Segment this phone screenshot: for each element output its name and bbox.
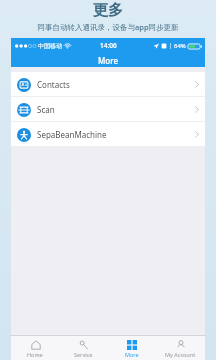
- button[interactable]: More: [107, 336, 156, 360]
- staticText: Contacts: [37, 79, 70, 90]
- staticText: 同事自动转入通讯录，设备与app同步更新: [0, 22, 216, 32]
- button[interactable]: Home: [11, 336, 59, 360]
- staticText: More: [98, 55, 119, 66]
- staticText: SepaBeanMachine: [37, 129, 107, 140]
- button[interactable]: Contacts: [11, 72, 205, 96]
- button[interactable]: My Account: [156, 336, 205, 360]
- button[interactable]: SepaBeanMachine: [11, 122, 205, 146]
- staticText: 14:06: [100, 41, 117, 50]
- staticText: 64%: [174, 42, 186, 50]
- staticText: Service: [74, 351, 93, 358]
- button[interactable]: Service: [59, 336, 107, 360]
- staticText: 中国移动: [38, 42, 62, 50]
- button[interactable]: Scan: [11, 97, 205, 121]
- staticText: More: [125, 351, 139, 358]
- staticText: Scan: [37, 104, 55, 115]
- staticText: 更多: [0, 1, 216, 20]
- staticText: My Account: [165, 351, 196, 358]
- staticText: Home: [27, 351, 43, 358]
